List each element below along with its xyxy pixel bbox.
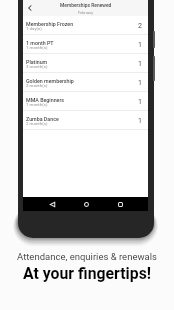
button[interactable]: MMA Beginners (23, 92, 148, 111)
staticText: Memberships Renewed (60, 2, 112, 8)
button[interactable]: Back (23, 1, 37, 15)
staticText: MMA Beginners (26, 97, 65, 103)
staticText: Platinum (26, 59, 48, 65)
button[interactable]: Golden membership (23, 73, 148, 92)
staticText: At your fingertips! (0, 264, 174, 283)
staticText: 2 month(s) (26, 121, 48, 126)
button[interactable]: Back (47, 199, 58, 210)
staticText: 1 month(s) (26, 45, 48, 50)
staticText: 1 (138, 60, 142, 68)
staticText: 2 (138, 22, 142, 30)
staticText: 1 day(s) (26, 26, 42, 31)
staticText: Golden membership (26, 78, 74, 84)
staticText: Attendance, enquiries & renewals (0, 251, 174, 262)
staticText: 1 (138, 117, 142, 125)
staticText: 3 month(s) (26, 83, 48, 88)
button[interactable]: Home (81, 199, 92, 210)
staticText: 1 (138, 41, 142, 49)
staticText: 1 (138, 98, 142, 106)
staticText: February (78, 10, 94, 15)
staticText: 1 month(s) (26, 102, 48, 107)
button[interactable]: Recents (115, 199, 126, 210)
button[interactable]: Membership Frozen (23, 16, 148, 35)
staticText: 1 (138, 79, 142, 87)
staticText: 3 month(s) (26, 64, 48, 69)
button[interactable]: Platinum (23, 54, 148, 73)
button[interactable]: 1 month PT (23, 35, 148, 54)
staticText: Zumba Dance (26, 116, 59, 122)
staticText: Membership Frozen (26, 21, 74, 27)
staticText: 1 month PT (26, 40, 54, 46)
button[interactable]: Zumba Dance (23, 111, 148, 130)
